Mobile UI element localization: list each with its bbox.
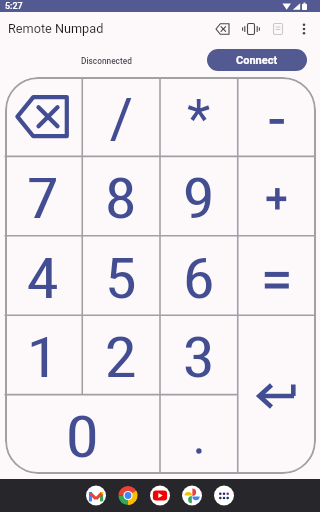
staticText: Remote Numpad xyxy=(8,21,104,36)
staticText: 9 xyxy=(183,166,215,232)
staticText: 3 xyxy=(183,325,215,391)
staticText: 0 xyxy=(65,403,99,471)
staticText: 5 xyxy=(105,246,137,312)
staticText: 4 xyxy=(27,246,59,312)
staticText: 6 xyxy=(183,246,215,312)
staticText: 5:27 xyxy=(5,1,23,12)
staticText: / xyxy=(109,86,134,152)
staticText: 1 xyxy=(27,325,59,391)
staticText: * xyxy=(187,87,211,150)
staticText: Connect xyxy=(236,54,278,67)
staticText: Disconnected xyxy=(81,56,132,66)
staticText: 8 xyxy=(105,166,137,232)
staticText: 2 xyxy=(105,325,137,391)
staticText: 7 xyxy=(27,166,59,232)
